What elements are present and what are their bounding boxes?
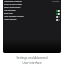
staticText: Use vibration [4, 9, 56, 12]
staticText: Allow bubbles [4, 18, 56, 21]
staticText: Hide sensitive content [4, 15, 56, 18]
button[interactable]: Blink light [3, 12, 61, 15]
button[interactable]: Notification settings [3, 0, 61, 3]
staticText: Manage [52, 0, 60, 3]
button[interactable]: Toggle off [56, 19, 60, 21]
button[interactable]: Silent notifications [3, 6, 61, 9]
staticText: Show on lock screen [4, 3, 60, 6]
staticText: Silent notifications [4, 6, 60, 9]
button[interactable]: Show on lock screen [3, 3, 61, 6]
staticText: Settings and Advanced [3, 56, 61, 60]
button[interactable]: Toggle on [56, 10, 60, 12]
staticText: User interface [3, 61, 61, 65]
button[interactable]: Use vibration [3, 9, 61, 12]
staticText: Notification settings [4, 0, 52, 3]
button[interactable]: Toggle on [56, 13, 60, 15]
button[interactable]: Toggle off [56, 16, 60, 18]
staticText: Blink light [4, 12, 56, 15]
button[interactable]: Hide sensitive content [3, 15, 61, 18]
button[interactable]: Allow bubbles [3, 18, 61, 21]
